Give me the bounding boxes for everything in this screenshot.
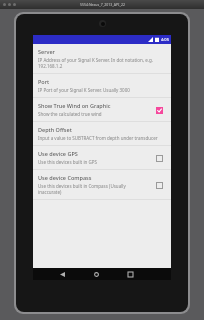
staticText: Show the calculated true wind <box>38 111 102 117</box>
staticText: Input a value to SUBTRACT from depth und… <box>38 135 158 141</box>
staticText: IP Address of your Signal K Server. In d… <box>38 57 166 69</box>
staticText: Use device Compass <box>38 174 92 181</box>
staticText: Use this devices built in Compass (Usual… <box>38 183 148 195</box>
button[interactable]: Back <box>56 268 68 280</box>
button[interactable]: Depth Offset <box>33 122 171 145</box>
button[interactable]: Use device Compass <box>33 170 171 199</box>
button[interactable]: Show True Wind on Graphic <box>33 98 171 121</box>
button[interactable]: Checked <box>152 103 166 117</box>
staticText: Depth Offset <box>38 126 72 133</box>
staticText: 5554:Nexus_7_2013_API_22 <box>80 2 125 7</box>
staticText: Port <box>38 78 50 85</box>
staticText: Use this devices built in GPS <box>38 159 97 165</box>
button[interactable]: Port <box>33 74 171 97</box>
staticText: Server <box>38 48 55 55</box>
staticText: IP Port of your Signal K Server. Usually… <box>38 87 130 93</box>
staticText: Show True Wind on Graphic <box>38 102 111 109</box>
button[interactable]: Unchecked <box>152 178 166 192</box>
button[interactable]: Recents <box>124 268 136 280</box>
staticText: 4:05 <box>161 37 169 42</box>
button[interactable]: Server <box>33 44 171 73</box>
button[interactable]: Use device GPS <box>33 146 171 169</box>
staticText: Use device GPS <box>38 150 78 157</box>
button[interactable]: Home <box>90 268 102 280</box>
button[interactable]: Unchecked <box>152 151 166 165</box>
